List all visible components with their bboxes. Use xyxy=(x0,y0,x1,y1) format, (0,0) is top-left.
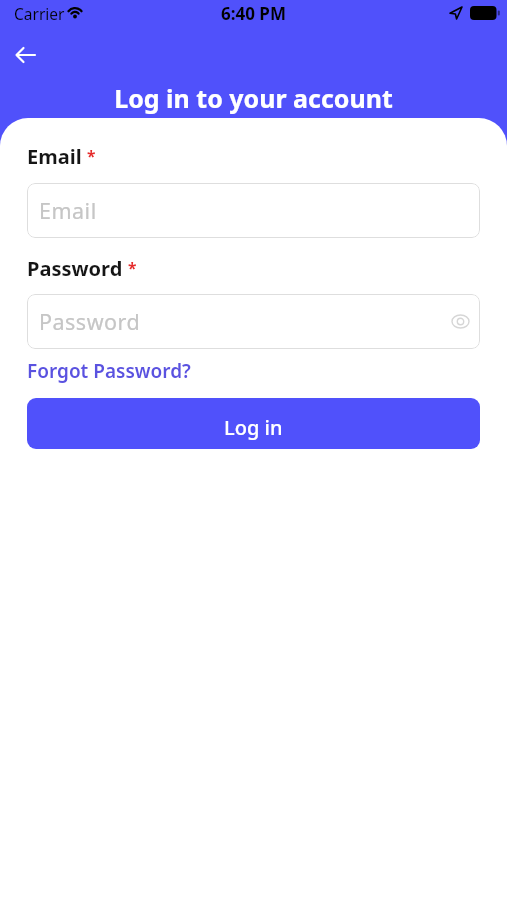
staticText: Password xyxy=(39,307,141,336)
staticText: Carrier xyxy=(14,3,65,24)
button[interactable]: Email xyxy=(27,183,480,238)
staticText: Log in to your account xyxy=(114,81,393,115)
staticText: Password xyxy=(27,255,123,282)
button[interactable]: Password xyxy=(27,294,480,349)
staticText: Email xyxy=(27,143,82,170)
button[interactable]: Log in xyxy=(27,398,480,449)
staticText: Email xyxy=(39,196,97,225)
staticText: * xyxy=(87,145,96,166)
staticText: 6:40 PM xyxy=(221,2,286,25)
button[interactable]: Forgot Password? xyxy=(27,358,191,384)
staticText: Log in xyxy=(224,414,283,441)
button[interactable] xyxy=(7,40,43,70)
staticText: * xyxy=(128,257,137,278)
